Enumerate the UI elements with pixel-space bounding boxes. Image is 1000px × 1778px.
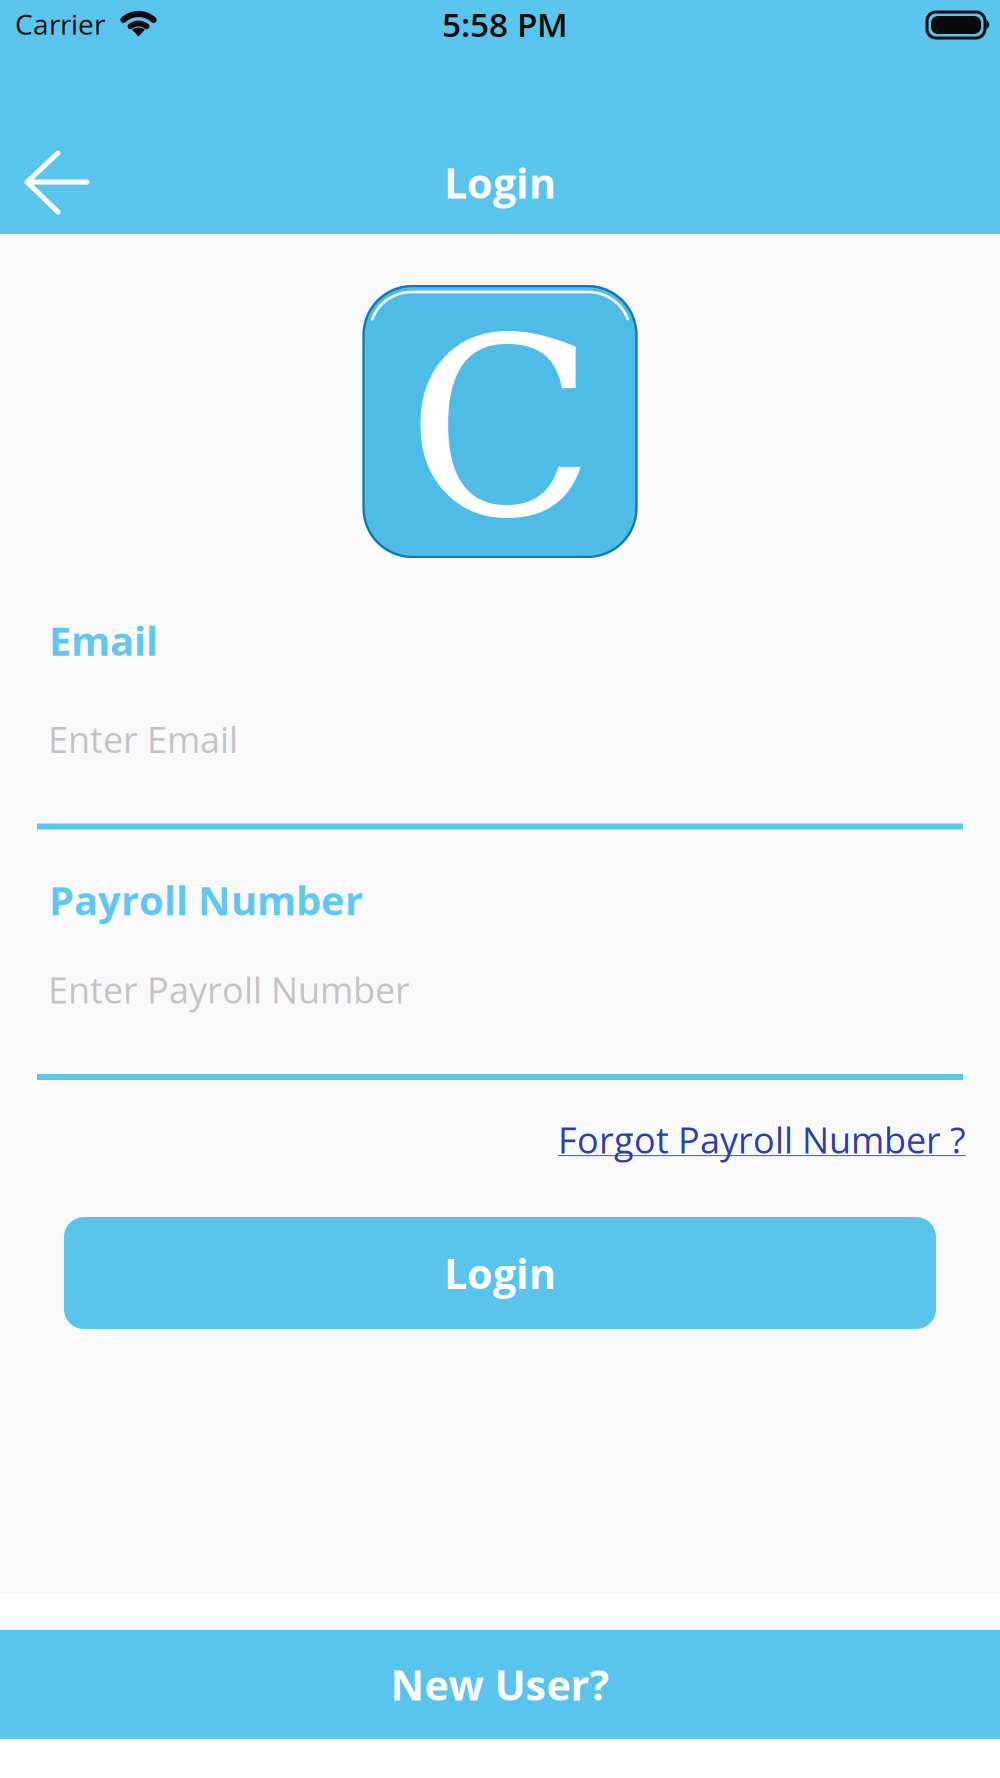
button[interactable]: Back	[0, 124, 114, 240]
staticText: 5:58 PM	[442, 1, 568, 47]
staticText: Payroll Number	[49, 872, 363, 927]
staticText: Login	[444, 1245, 556, 1301]
button[interactable]: New User?	[0, 1630, 1000, 1739]
staticText: Carrier	[15, 5, 105, 43]
button[interactable]: Forgot Payroll Number ?	[555, 1115, 963, 1164]
staticText: New User?	[390, 1656, 609, 1713]
staticText: Enter Email	[48, 714, 238, 763]
staticText: Login	[444, 154, 556, 211]
staticText: Email	[49, 613, 158, 667]
staticText: C	[406, 286, 595, 573]
staticText: Enter Payroll Number	[48, 965, 410, 1014]
staticText: Forgot Payroll Number ?	[558, 1115, 966, 1164]
button[interactable]: Login	[64, 1217, 936, 1329]
